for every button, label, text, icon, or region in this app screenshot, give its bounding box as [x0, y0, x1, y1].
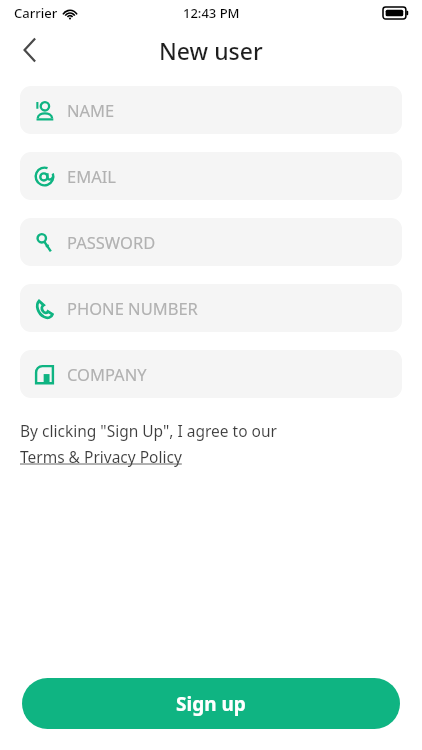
staticText: NAME [67, 99, 115, 121]
staticText: EMAIL [67, 165, 116, 187]
button[interactable]: Terms & Privacy Policy [20, 446, 182, 467]
button[interactable]: Back [8, 28, 52, 72]
staticText: Terms & Privacy Policy [20, 446, 182, 467]
button[interactable]: PHONE NUMBER [20, 284, 402, 332]
staticText: COMPANY [67, 363, 147, 385]
button[interactable]: COMPANY [20, 350, 402, 398]
button[interactable]: EMAIL [20, 152, 402, 200]
button[interactable]: Sign up [22, 678, 400, 729]
staticText: Sign up [176, 691, 246, 717]
button[interactable]: NAME [20, 86, 402, 134]
staticText: 12:43 PM [183, 4, 240, 22]
staticText: PHONE NUMBER [67, 297, 198, 319]
button[interactable]: PASSWORD [20, 218, 402, 266]
staticText: New user [159, 35, 263, 66]
staticText: PASSWORD [67, 231, 156, 253]
staticText: Carrier [14, 4, 58, 22]
staticText: By clicking "Sign Up", I agree to our [20, 420, 277, 441]
